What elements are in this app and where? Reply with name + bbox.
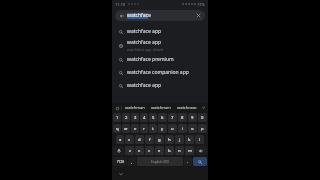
button[interactable]: 5 [149,113,157,122]
staticText: e [134,126,137,132]
staticText: 1 [116,115,119,121]
staticText: , [131,159,133,165]
button[interactable]: b [165,146,174,155]
button[interactable]: t [149,124,157,133]
button[interactable]: watchcase [174,103,200,112]
button[interactable]: . [184,157,192,166]
button[interactable]: 8 [178,113,187,122]
button[interactable]: watchface premium [112,53,208,66]
staticText: watchface app details [127,47,164,52]
button[interactable]: l [195,135,204,144]
button[interactable]: u [168,124,177,133]
button[interactable]: r [140,124,148,133]
staticText: watchman [125,105,145,110]
button[interactable]: z [125,146,134,155]
staticText: 5 [152,115,155,121]
staticText: f [149,137,151,143]
staticText: l [199,137,201,143]
button[interactable]: f [145,135,154,144]
button[interactable]: watchface companion app [112,66,208,79]
button[interactable]: Backspace [195,146,207,155]
button[interactable]: 6 [158,113,167,122]
staticText: watchface premium [127,56,174,63]
button[interactable]: m [185,146,194,155]
button[interactable]: watchface app [112,38,208,53]
button[interactable]: , [128,157,136,166]
button[interactable]: i [178,124,187,133]
staticText: o [191,126,194,132]
button[interactable]: p [198,124,207,133]
button[interactable]: w [122,124,130,133]
button[interactable]: y [158,124,167,133]
staticText: 0 [201,115,204,121]
staticText: watchface app [127,82,162,89]
button[interactable]: watchface app [112,25,208,38]
button[interactable]: g [155,135,164,144]
button[interactable]: s [125,135,134,144]
button[interactable]: ?123 [113,157,127,166]
button[interactable]: Voice input [114,105,120,111]
staticText: 9 [191,115,194,121]
button[interactable]: c [145,146,154,155]
staticText: y [161,126,164,132]
button[interactable]: English (US) [137,157,183,166]
staticText: watchface [127,12,151,19]
button[interactable]: o [188,124,197,133]
button[interactable]: 0 [198,113,207,122]
button[interactable]: d [135,135,144,144]
staticText: z [129,148,131,154]
staticText: b [168,148,171,154]
button[interactable]: 9 [188,113,197,122]
staticText: u [171,126,174,132]
button[interactable]: j [175,135,184,144]
button[interactable]: 2 [122,113,130,122]
staticText: x [138,148,141,154]
staticText: v [158,148,161,154]
button[interactable]: Clear search [195,12,202,19]
button[interactable]: More suggestions [200,103,206,112]
staticText: 2 [125,115,128,121]
button[interactable]: Back [115,10,205,21]
button[interactable]: a [116,135,124,144]
button[interactable]: h [165,135,174,144]
staticText: w [124,126,128,132]
button[interactable]: Search [193,157,207,166]
button[interactable]: 1 [113,113,121,122]
staticText: watchface companion app [127,69,189,76]
button[interactable]: x [135,146,144,155]
button[interactable]: 7 [168,113,177,122]
staticText: 17% [197,2,205,7]
button[interactable]: n [175,146,184,155]
button[interactable]: e [131,124,139,133]
staticText: 3 [134,115,137,121]
staticText: c [148,148,151,154]
staticText: j [179,137,181,143]
button[interactable]: 4 [140,113,148,122]
button[interactable]: q [113,124,121,133]
staticText: 7 [171,115,174,121]
staticText: p [201,126,204,132]
staticText: a [119,137,122,143]
staticText: k [188,137,191,143]
staticText: q [116,126,119,132]
staticText: 6 [161,115,164,121]
staticText: 8 [181,115,184,121]
button[interactable]: watchman [122,103,148,112]
staticText: g [158,137,161,143]
button[interactable]: watchface app [112,79,208,92]
button[interactable]: watchmen [148,103,174,112]
staticText: ?123 [117,160,124,164]
staticText: . [187,159,189,165]
staticText: s [128,137,131,143]
button[interactable]: Hide keyboard [116,169,125,178]
staticText: d [138,137,141,143]
button[interactable]: 3 [131,113,139,122]
staticText: English (US) [151,160,169,164]
staticText: n [178,148,181,154]
button[interactable]: Shift [113,146,124,155]
button[interactable]: v [155,146,164,155]
button[interactable]: Back [118,12,125,19]
staticText: 11:15 [115,2,126,7]
staticText: 4 [143,115,146,121]
button[interactable]: k [185,135,194,144]
